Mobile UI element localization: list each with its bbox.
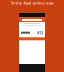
staticText: Order food online now: [10, 0, 53, 6]
staticText: $12: [37, 30, 43, 35]
